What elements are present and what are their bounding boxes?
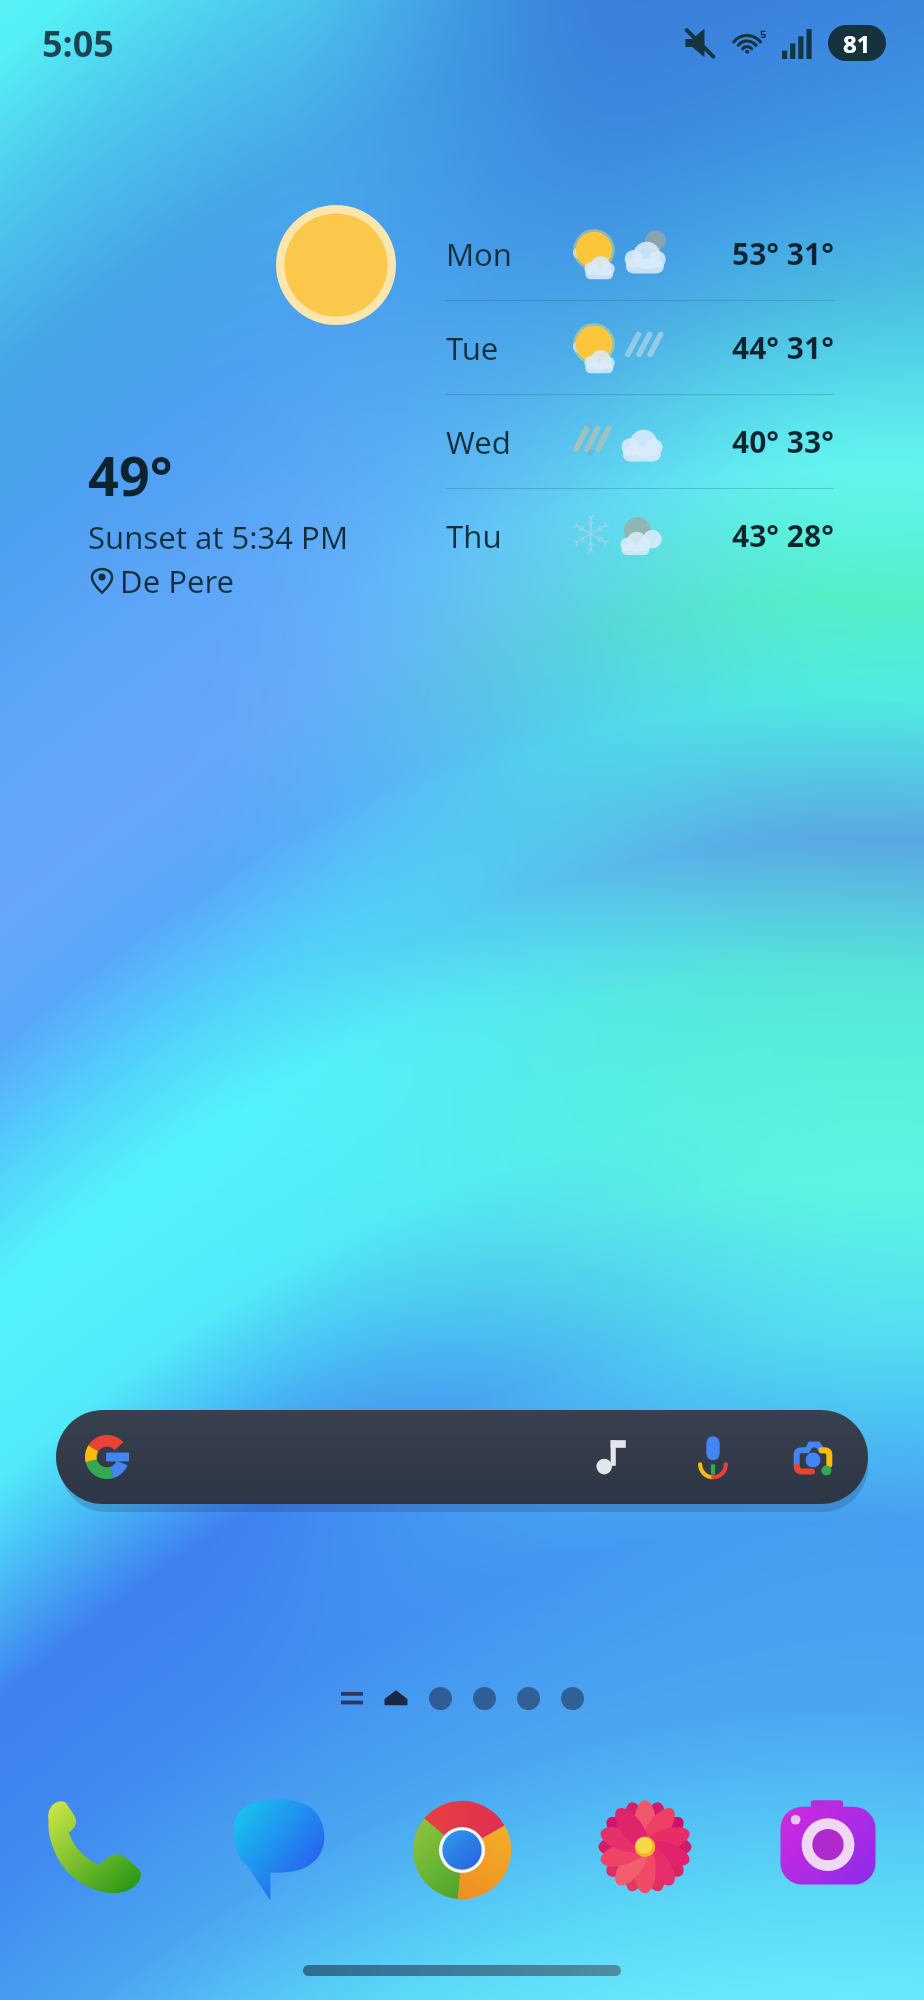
button[interactable]: Chrome — [398, 1786, 526, 1914]
staticText: Wed — [446, 421, 576, 463]
button[interactable]: Tue — [446, 301, 834, 394]
staticText: 5:05 — [42, 19, 114, 68]
button[interactable]: Google Search — [78, 1428, 136, 1486]
staticText: 40° 33° — [732, 421, 834, 462]
staticText: 49° — [88, 438, 173, 512]
button[interactable]: Voice search — [684, 1428, 742, 1486]
button[interactable]: Wed — [446, 395, 834, 488]
staticText: 43° 28° — [732, 515, 834, 556]
button[interactable]: Google Search — [56, 1410, 868, 1504]
button[interactable]: Phone — [32, 1786, 160, 1914]
button[interactable]: Messages — [215, 1786, 343, 1914]
button[interactable]: Camera — [764, 1786, 892, 1914]
button[interactable]: All apps — [330, 1676, 374, 1720]
staticText: 53° 31° — [732, 233, 834, 274]
button[interactable]: Photos — [581, 1786, 709, 1914]
staticText: 44° 31° — [732, 327, 834, 368]
staticText: Thu — [446, 515, 576, 557]
staticText: 81 — [843, 27, 871, 60]
button[interactable]: Page 5 — [550, 1676, 594, 1720]
button[interactable]: Page 3 — [462, 1676, 506, 1720]
button[interactable]: Thu — [446, 489, 834, 582]
button[interactable]: Search a song — [584, 1428, 642, 1486]
staticText: De Pere — [120, 560, 235, 602]
staticText: Tue — [446, 327, 576, 369]
button[interactable]: Google Lens — [784, 1428, 842, 1486]
button[interactable]: Page 2 — [418, 1676, 462, 1720]
button[interactable]: Home page — [374, 1676, 418, 1720]
button[interactable]: 49° — [84, 434, 352, 606]
button[interactable]: Page 4 — [506, 1676, 550, 1720]
staticText: Sunset at 5:34 PM — [88, 516, 348, 558]
staticText: Mon — [446, 233, 576, 275]
button[interactable]: Mon — [446, 207, 834, 300]
